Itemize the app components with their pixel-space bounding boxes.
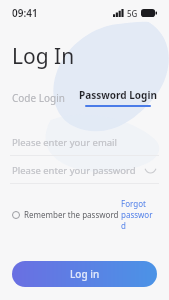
staticText: Log In <box>12 42 75 71</box>
staticText: 5G <box>127 8 138 19</box>
button[interactable]: Code Login <box>12 89 65 107</box>
staticText: Remember the password <box>24 209 119 220</box>
staticText: Log in <box>70 267 100 281</box>
staticText: 09:41 <box>12 6 38 20</box>
button[interactable]: Remember the password <box>10 206 121 223</box>
button[interactable]: Show password <box>143 163 157 177</box>
button[interactable]: Please enter your password <box>0 157 169 183</box>
button[interactable]: Forgot password <box>121 195 157 234</box>
button[interactable]: Log in <box>12 261 157 287</box>
button[interactable]: Password Login <box>79 88 157 107</box>
staticText: Password Login <box>79 88 157 102</box>
button[interactable]: Please enter your email <box>0 129 169 155</box>
staticText: Forgot password <box>121 198 157 231</box>
staticText: Please enter your email <box>12 136 118 149</box>
staticText: Please enter your password <box>12 164 136 177</box>
staticText: Code Login <box>12 91 65 105</box>
